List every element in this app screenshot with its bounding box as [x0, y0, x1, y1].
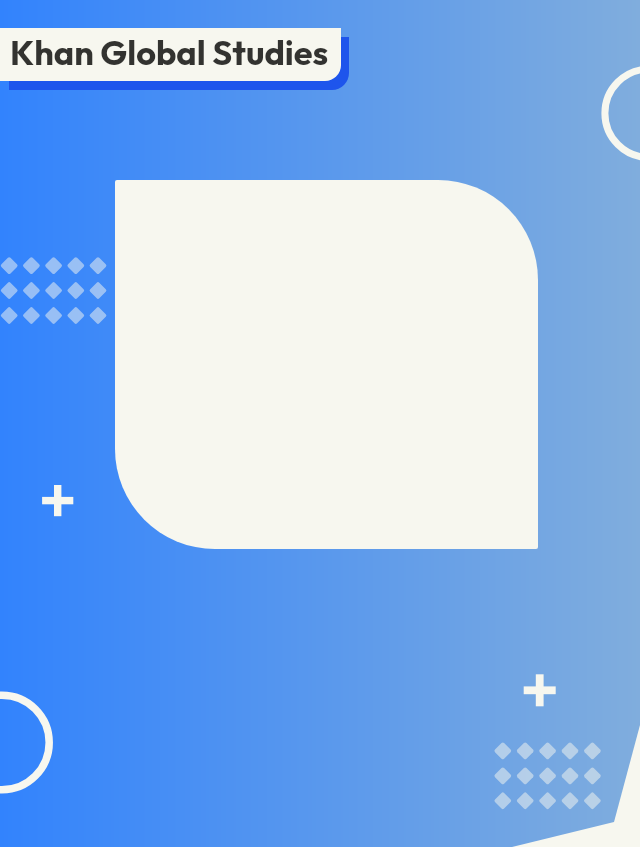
button[interactable]: Khan Global Studies logo [115, 180, 538, 549]
button[interactable]: Khan Global Studies [0, 28, 341, 81]
staticText: Khan Global Studies [10, 31, 329, 74]
